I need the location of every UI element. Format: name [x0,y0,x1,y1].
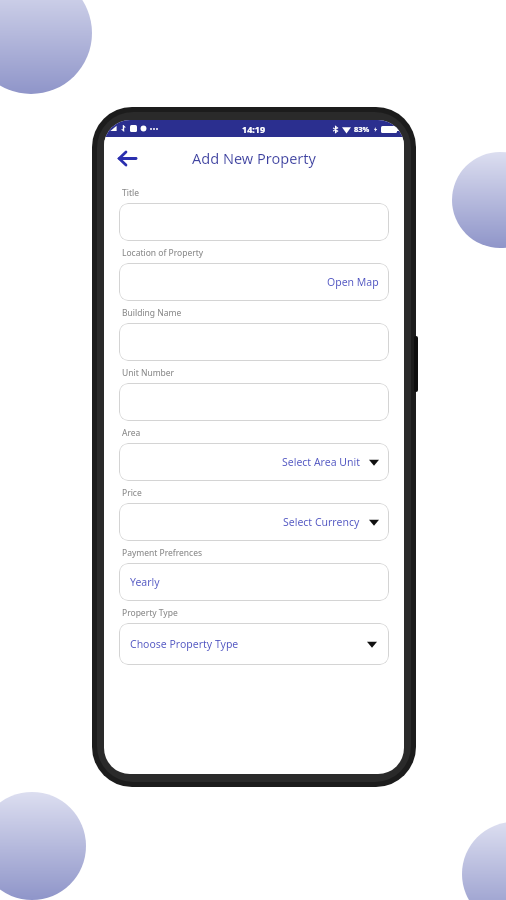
staticText: Area [122,427,141,439]
button[interactable]: Yearly [119,563,389,601]
staticText: Title [122,187,139,199]
button[interactable]: Choose Property Type [119,623,389,665]
staticText: Payment Prefrences [122,547,203,559]
staticText: Price [122,487,142,499]
staticText: Select Currency [283,515,360,529]
button[interactable] [119,323,389,361]
staticText: Location of Property [122,247,204,259]
button[interactable]: Select Area Unit [119,443,389,481]
button[interactable] [119,203,389,241]
staticText: Choose Property Type [130,637,239,651]
staticText: Add New Property [192,148,316,168]
staticText: Yearly [130,575,160,589]
staticText: Unit Number [122,367,175,379]
button[interactable]: Open Map [119,263,389,301]
button[interactable]: Select Currency [119,503,389,541]
staticText: Select Area Unit [282,455,360,469]
staticText: Property Type [122,607,178,619]
staticText: Building Name [122,307,182,319]
staticText: 83% [354,124,370,134]
staticText: 14:19 [242,123,266,135]
staticText: Open Map [327,275,379,289]
button[interactable] [119,383,389,421]
button[interactable]: Back [110,141,144,175]
